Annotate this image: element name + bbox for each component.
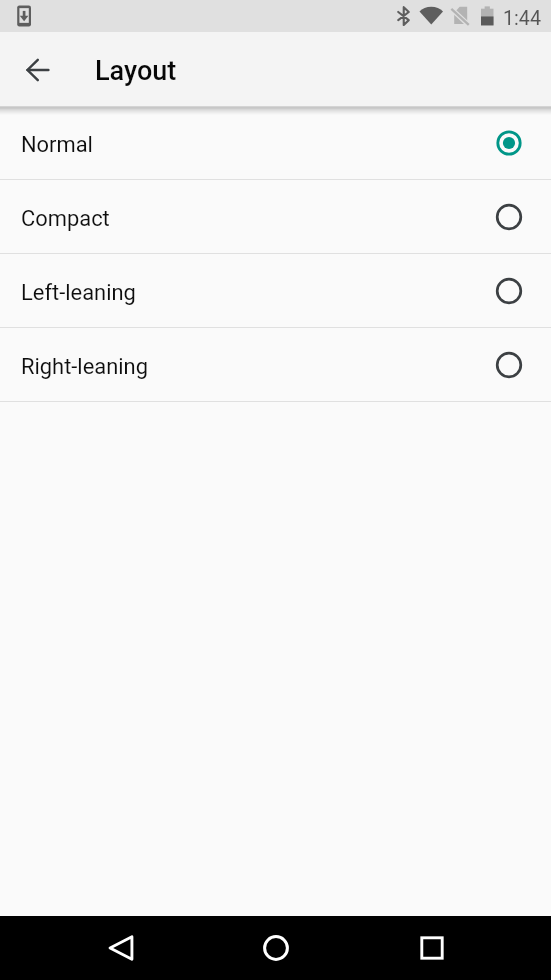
staticText: Compact [21, 206, 110, 232]
staticText: Left-leaning [21, 280, 136, 306]
button[interactable]: Left-leaning [0, 254, 551, 327]
staticText: 1:44 [503, 7, 541, 30]
staticText: Right-leaning [21, 354, 149, 380]
button[interactable]: Home [244, 916, 308, 980]
button[interactable]: Compact [0, 180, 551, 253]
button[interactable]: Right-leaning [0, 328, 551, 401]
button[interactable]: Navigate up [11, 43, 65, 97]
button[interactable]: Normal [0, 106, 551, 179]
staticText: Layout [95, 55, 177, 87]
staticText: Normal [21, 132, 93, 158]
button[interactable]: Back [89, 916, 153, 980]
button[interactable]: Recent apps [400, 916, 464, 980]
